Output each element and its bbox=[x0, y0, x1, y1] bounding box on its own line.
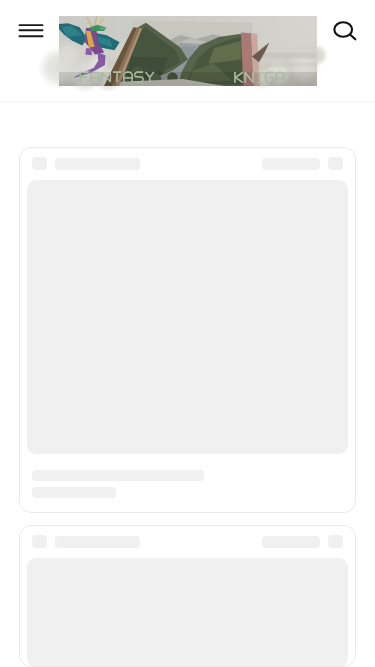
button[interactable] bbox=[19, 525, 356, 667]
button[interactable] bbox=[19, 147, 356, 513]
button[interactable]: Menu bbox=[13, 14, 49, 50]
button[interactable]: Fantasy Kniga logo bbox=[59, 16, 317, 86]
button[interactable]: Search bbox=[327, 11, 363, 47]
